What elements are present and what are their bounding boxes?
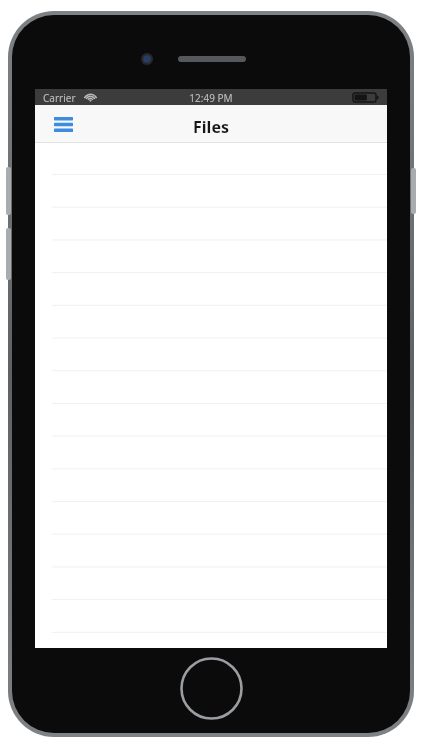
button[interactable]: Menu	[41, 107, 85, 141]
staticText: 12:49 PM	[35, 91, 387, 107]
staticText: Carrier	[43, 91, 76, 105]
staticText: Files	[35, 116, 387, 154]
